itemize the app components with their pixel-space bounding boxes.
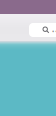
- staticText: Search: [51, 19, 56, 35]
- button[interactable]: Search: [29, 23, 56, 37]
